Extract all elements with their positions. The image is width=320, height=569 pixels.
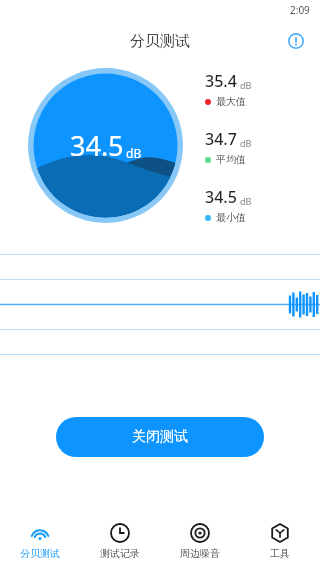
staticText: dB <box>240 195 252 207</box>
staticText: dB <box>126 145 142 161</box>
staticText: dB <box>240 137 252 149</box>
staticText: 工具 <box>270 547 290 560</box>
staticText: dB <box>240 79 252 91</box>
staticText: 34.5 <box>70 127 124 164</box>
staticText: 最小值 <box>216 211 246 224</box>
button[interactable]: 关闭测试 <box>56 417 264 457</box>
button[interactable]: 分贝测试 <box>0 513 80 569</box>
staticText: 35.4 <box>205 70 237 92</box>
button[interactable]: Info <box>282 27 310 55</box>
staticText: 分贝测试 <box>20 547 60 560</box>
button[interactable]: 测试记录 <box>80 513 160 569</box>
staticText: 关闭测试 <box>132 428 188 446</box>
staticText: 平均值 <box>216 153 246 166</box>
staticText: 34.5 <box>205 186 237 208</box>
staticText: 分贝测试 <box>130 32 190 51</box>
staticText: 34.7 <box>205 128 237 150</box>
staticText: 2:09 <box>290 3 310 17</box>
staticText: 最大值 <box>216 95 246 108</box>
staticText: 测试记录 <box>100 547 140 560</box>
staticText: 周边噪音 <box>180 547 220 560</box>
button[interactable]: 周边噪音 <box>160 513 240 569</box>
button[interactable]: 工具 <box>240 513 320 569</box>
